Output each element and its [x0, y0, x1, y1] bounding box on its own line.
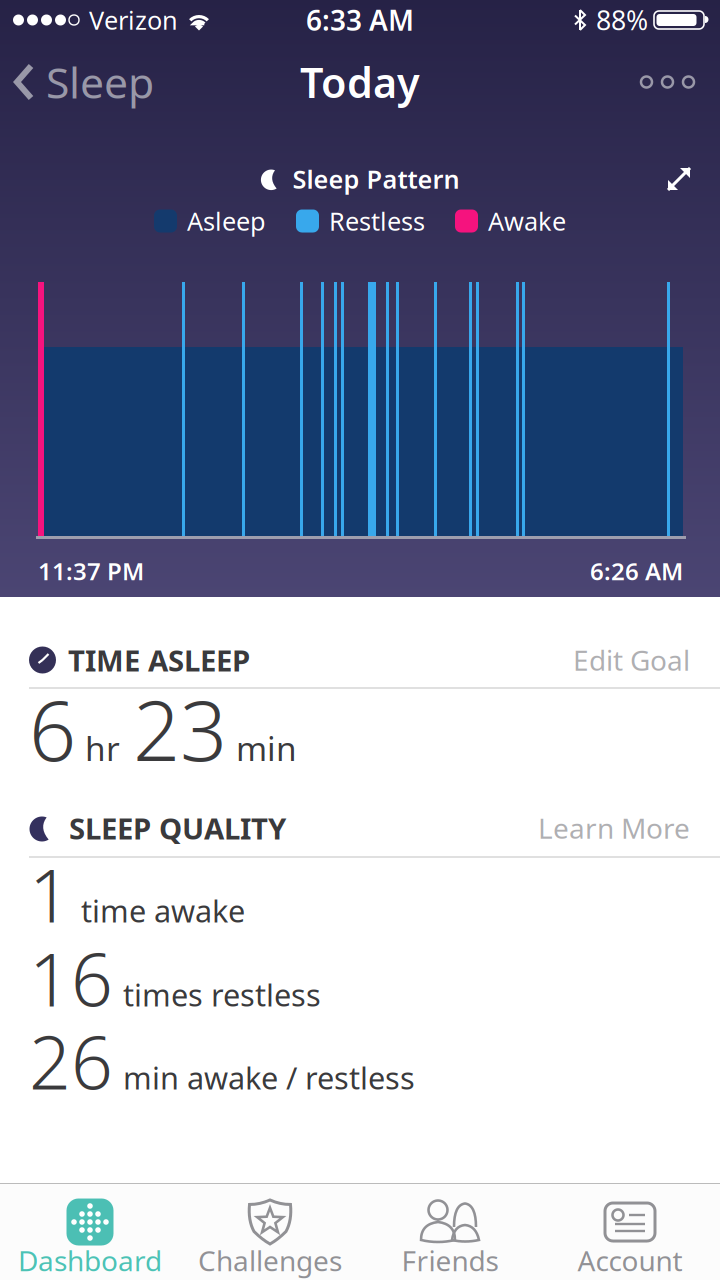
staticText: SLEEP QUALITY: [69, 808, 286, 847]
button[interactable]: Account: [540, 1196, 720, 1273]
staticText: Verizon: [89, 3, 178, 37]
staticText: Edit Goal: [573, 641, 690, 679]
staticText: 6:26 AM: [590, 555, 683, 587]
button[interactable]: Expand chart: [664, 164, 694, 194]
staticText: TIME ASLEEP: [68, 640, 250, 679]
staticText: 11:37 PM: [38, 555, 144, 587]
staticText: 6: [29, 674, 76, 784]
staticText: Today: [300, 55, 420, 109]
staticText: Awake: [488, 204, 566, 238]
staticText: 26: [29, 1012, 113, 1110]
button[interactable]: Learn More: [538, 809, 690, 847]
staticText: hr: [85, 726, 120, 770]
button[interactable]: More options: [641, 76, 694, 87]
staticText: times restless: [123, 974, 321, 1015]
staticText: Sleep: [46, 54, 154, 110]
staticText: min awake / restless: [123, 1057, 415, 1098]
staticText: Account: [577, 1242, 682, 1279]
button[interactable]: Dashboard: [0, 1196, 180, 1273]
staticText: Sleep Pattern: [292, 162, 459, 196]
staticText: 23: [133, 674, 227, 784]
staticText: 88%: [596, 2, 648, 38]
button[interactable]: Challenges: [180, 1196, 360, 1273]
staticText: Restless: [329, 204, 425, 238]
staticText: 1: [29, 845, 71, 943]
staticText: time awake: [81, 890, 245, 931]
staticText: Friends: [401, 1242, 498, 1279]
staticText: Dashboard: [18, 1242, 162, 1279]
staticText: Learn More: [538, 809, 690, 847]
button[interactable]: Edit Goal: [573, 641, 690, 679]
staticText: Asleep: [187, 204, 266, 238]
staticText: 16: [29, 929, 113, 1027]
staticText: Challenges: [198, 1242, 342, 1279]
staticText: min: [236, 726, 297, 770]
button[interactable]: Sleep: [14, 54, 154, 110]
button[interactable]: Friends: [360, 1196, 540, 1273]
staticText: 6:33 AM: [306, 1, 414, 39]
